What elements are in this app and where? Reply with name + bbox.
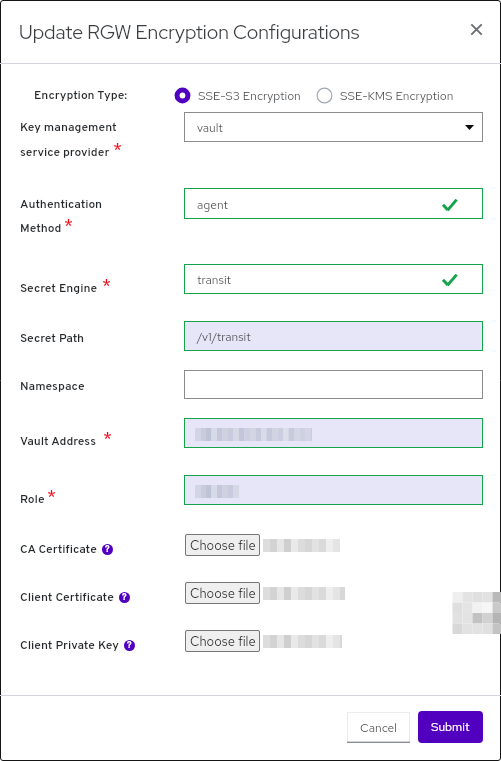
staticText: Role [20,492,45,507]
staticText: * [102,276,112,298]
button[interactable]: Submit [418,711,483,743]
staticText: Secret Engine [20,281,98,296]
staticText: * [47,487,57,509]
staticText: ? [122,592,127,603]
staticText: CA Certificate [20,542,97,557]
button[interactable]: Choose file [185,630,260,652]
staticText: Namespace [20,379,85,394]
staticText: Choose file [190,585,256,602]
staticText: Update RGW Encryption Configurations [19,19,360,45]
button[interactable] [184,188,483,219]
button[interactable]: Cancel [347,712,410,743]
staticText: Authentication [20,197,103,212]
staticText: SSE-S3 Encryption [198,88,301,104]
staticText: vault [197,120,223,136]
staticText: * [64,216,74,238]
staticText: Client Private Key [20,638,119,653]
staticText: Choose file [190,633,256,650]
staticText: ? [105,544,110,555]
staticText: Secret Path [20,331,85,346]
staticText: Submit [431,719,470,735]
button[interactable] [184,418,483,448]
button[interactable]: Choose file [185,582,260,604]
button[interactable] [184,264,483,294]
staticText: Choose file [190,537,256,554]
staticText: Cancel [360,720,397,736]
button[interactable]: Choose file [185,534,260,556]
staticText: Method [20,221,62,236]
staticText: Client Certificate [20,590,114,605]
button[interactable] [184,370,483,399]
staticText: Vault Address [20,434,96,449]
staticText: ? [127,640,132,651]
button[interactable]: Close dialog [466,19,487,40]
staticText: Encryption Type: [34,88,128,103]
button[interactable] [184,321,483,351]
staticText: service provider [20,145,110,160]
staticText: SSE-KMS Encryption [340,88,454,104]
button[interactable] [184,112,483,142]
button[interactable] [184,475,483,505]
staticText: * [103,429,113,451]
staticText: * [113,140,123,162]
staticText: /v1/transit [197,329,251,345]
button[interactable]: SSE-KMS Encryption [316,87,454,104]
button[interactable]: SSE-S3 Encryption [174,87,301,104]
staticText: agent [197,197,228,213]
staticText: transit [197,272,232,288]
staticText: Key management [20,120,117,135]
